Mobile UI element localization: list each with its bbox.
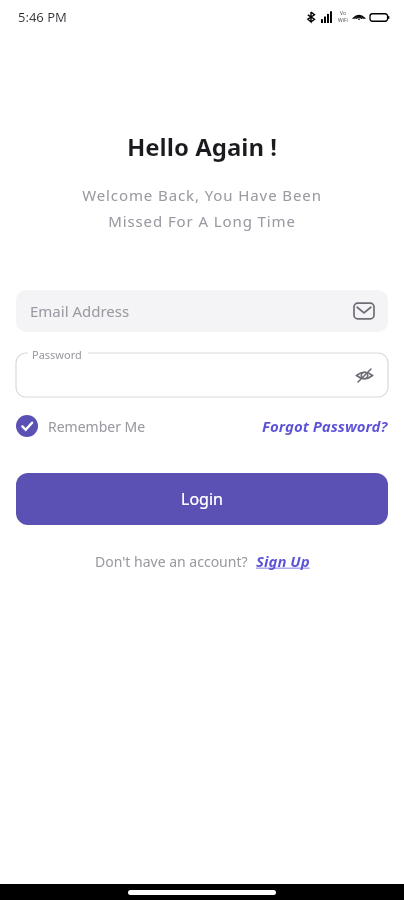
button[interactable]: Show password <box>16 353 388 397</box>
staticText: WiFi <box>338 17 348 24</box>
staticText: Remember Me <box>48 417 146 436</box>
staticText: Login <box>181 488 223 510</box>
staticText: Vo <box>340 10 346 17</box>
staticText: Welcome Back, You Have Been Missed For A… <box>0 185 404 232</box>
button[interactable]: Remember Me <box>16 415 146 437</box>
staticText: Sign Up <box>256 551 310 571</box>
button[interactable]: Sign Up <box>256 551 310 571</box>
button[interactable]: Email Address <box>16 290 388 332</box>
staticText: Email Address <box>30 301 354 321</box>
other: Email <box>354 301 374 321</box>
staticText: Don't have an account? <box>95 552 248 571</box>
other: Show password <box>355 366 374 385</box>
button[interactable]: Forgot Password? <box>262 416 388 436</box>
staticText: Forgot Password? <box>262 416 388 436</box>
staticText: 5:46 PM <box>18 8 67 26</box>
staticText: Hello Again ! <box>0 130 404 163</box>
staticText: Password <box>32 347 82 362</box>
button[interactable]: Login <box>16 473 388 525</box>
